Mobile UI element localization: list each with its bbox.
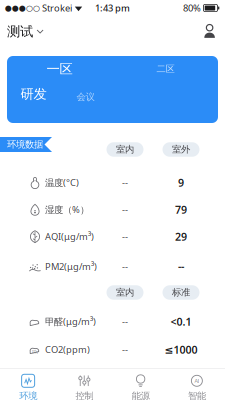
staticText: 温度(°C): [45, 176, 79, 189]
button[interactable]: 二区: [139, 60, 191, 78]
button[interactable]: 会议: [68, 88, 102, 105]
staticText: 环境: [19, 390, 37, 400]
staticText: --: [122, 230, 128, 243]
button[interactable]: 测试: [0, 16, 51, 47]
button[interactable]: 控制: [56, 369, 112, 400]
staticText: --: [178, 259, 184, 274]
staticText: 测试: [7, 23, 33, 40]
staticText: 标准: [172, 287, 190, 298]
staticText: --: [122, 343, 128, 356]
staticText: Strokei: [40, 2, 74, 14]
staticText: 湿度（%）: [45, 203, 89, 216]
staticText: 室内: [116, 144, 134, 155]
staticText: --: [122, 203, 128, 216]
staticText: 二区: [156, 63, 174, 75]
staticText: <0.1: [170, 314, 191, 329]
staticText: 室外: [172, 144, 190, 155]
staticText: 智能: [188, 390, 206, 400]
staticText: CO2(ppm): [45, 343, 90, 356]
staticText: 会议: [76, 91, 94, 103]
staticText: 研发: [20, 86, 46, 102]
staticText: ≤1000: [164, 342, 197, 357]
staticText: 控制: [75, 390, 93, 400]
staticText: 环境数据: [7, 139, 43, 150]
staticText: --: [122, 315, 128, 328]
staticText: --: [122, 176, 128, 189]
staticText: 能源: [132, 390, 150, 400]
staticText: ●●●○○: [5, 3, 40, 13]
staticText: CO₂: [32, 349, 38, 354]
button[interactable]: 账户: [194, 19, 225, 43]
button[interactable]: 环境: [0, 369, 56, 400]
staticText: 室内: [116, 287, 134, 298]
button[interactable]: AI: [169, 369, 225, 400]
staticText: --: [122, 260, 128, 273]
staticText: 1:43 pm: [95, 2, 130, 14]
staticText: 9: [178, 175, 184, 190]
button[interactable]: 研发: [16, 85, 50, 102]
staticText: 80%: [183, 2, 201, 14]
staticText: PM2(μg/m³): [45, 260, 97, 273]
staticText: 29: [175, 229, 187, 244]
button[interactable]: 能源: [112, 369, 169, 400]
staticText: AI: [194, 377, 199, 384]
staticText: 79: [175, 202, 187, 217]
button[interactable]: 一区: [33, 60, 85, 78]
staticText: 甲醛(μg/m³): [45, 315, 96, 328]
staticText: AQI(μg/m³): [45, 230, 94, 243]
staticText: 一区: [46, 61, 72, 77]
